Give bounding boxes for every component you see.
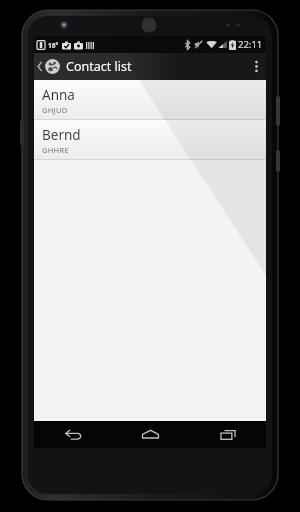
staticText: Anna: [42, 86, 75, 104]
staticText: 22:11: [238, 38, 263, 51]
staticText: GHHRE: [42, 145, 69, 155]
button[interactable]: Bernd: [34, 120, 266, 159]
staticText: Contact list: [66, 58, 132, 75]
staticText: Bernd: [42, 126, 81, 144]
button[interactable]: Home: [112, 421, 189, 448]
staticText: 16°: [48, 41, 59, 50]
staticText: GHJUD: [42, 105, 68, 115]
button[interactable]: Anna: [34, 80, 266, 119]
button[interactable]: Navigate up: [34, 53, 138, 80]
button[interactable]: Back: [34, 421, 112, 448]
button[interactable]: More options: [246, 53, 266, 80]
button[interactable]: Recents: [189, 421, 266, 448]
